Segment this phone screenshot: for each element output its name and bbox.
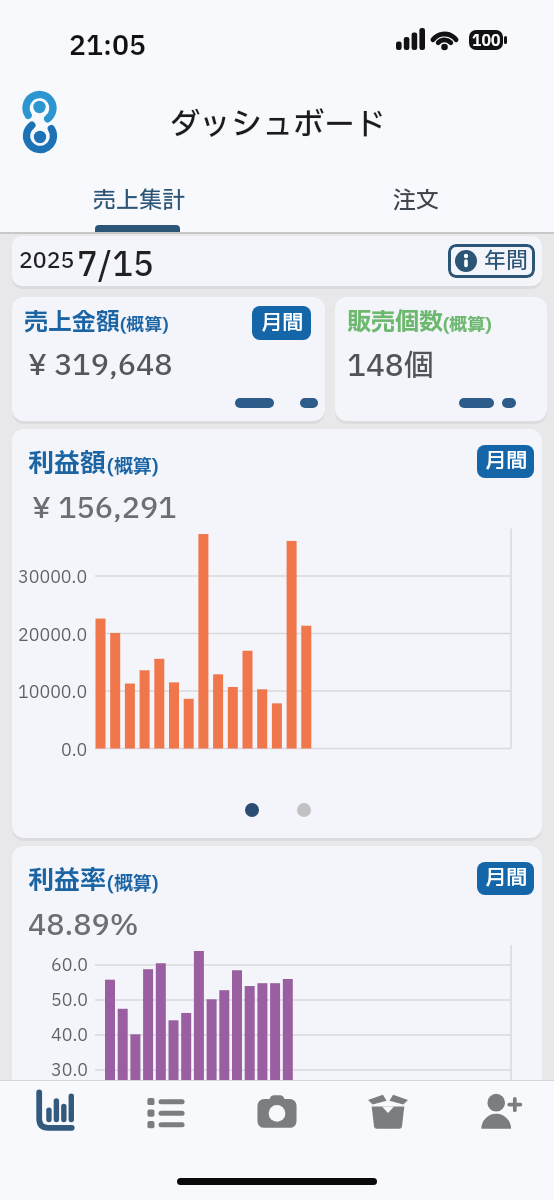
button[interactable]: 利益率 <box>12 846 542 1200</box>
staticText: 50.0 <box>51 988 88 1013</box>
staticText: 48.89% <box>28 904 139 947</box>
staticText: 月間 <box>261 308 303 339</box>
button[interactable]: 注文 <box>277 172 554 230</box>
staticText: (概算) <box>443 312 492 339</box>
staticText: 0.0 <box>61 738 88 763</box>
button[interactable] <box>121 1080 211 1144</box>
button[interactable]: 年間 <box>448 244 535 278</box>
staticText: 販売個数 <box>347 305 443 341</box>
staticText: ダッシュボード <box>169 102 386 148</box>
button[interactable]: 月間 <box>477 445 534 478</box>
staticText: ¥ 156,291 <box>32 487 177 530</box>
staticText: 21:05 <box>69 26 147 66</box>
button[interactable] <box>343 1080 433 1144</box>
button[interactable]: 月間 <box>252 306 311 340</box>
staticText: 7/15 <box>77 241 154 286</box>
staticText: 100 <box>472 30 501 50</box>
button[interactable]: 売上金額 <box>12 297 325 421</box>
staticText: (概算) <box>107 870 159 898</box>
staticText: 売上金額 <box>24 305 120 341</box>
staticText: 2025 <box>19 245 75 278</box>
staticText: 注文 <box>393 184 439 218</box>
staticText: 月間 <box>485 863 527 894</box>
staticText: 20000.0 <box>18 623 88 648</box>
button[interactable]: 売上集計 <box>0 172 277 230</box>
button[interactable] <box>232 1080 322 1144</box>
staticText: (概算) <box>107 453 159 481</box>
staticText: 40.0 <box>51 1023 88 1048</box>
staticText: ¥ 319,648 <box>28 344 173 387</box>
staticText: 年間 <box>484 245 529 278</box>
staticText: 148個 <box>347 344 434 389</box>
staticText: 月間 <box>485 446 527 477</box>
staticText: 30000.0 <box>18 565 88 590</box>
button[interactable]: 2025 <box>12 236 542 286</box>
staticText: 10000.0 <box>18 680 88 705</box>
button[interactable] <box>454 1080 544 1144</box>
button[interactable]: 月間 <box>477 862 534 895</box>
staticText: 利益額 <box>28 444 107 483</box>
staticText: 利益率 <box>28 861 107 900</box>
button[interactable]: 販売個数 <box>335 297 547 421</box>
button[interactable] <box>10 1080 100 1144</box>
staticText: 60.0 <box>51 953 88 978</box>
staticText: 30.0 <box>51 1058 88 1083</box>
staticText: 売上集計 <box>93 184 185 218</box>
button[interactable]: 利益額 <box>12 429 542 838</box>
staticText: (概算) <box>120 312 169 339</box>
